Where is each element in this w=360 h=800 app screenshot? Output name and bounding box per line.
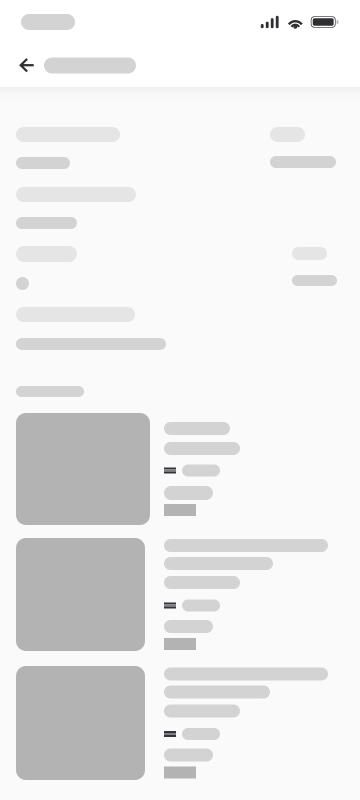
- button[interactable]: [16, 413, 360, 525]
- button[interactable]: Back: [11, 44, 43, 87]
- button[interactable]: [16, 538, 360, 651]
- button[interactable]: [16, 666, 360, 780]
